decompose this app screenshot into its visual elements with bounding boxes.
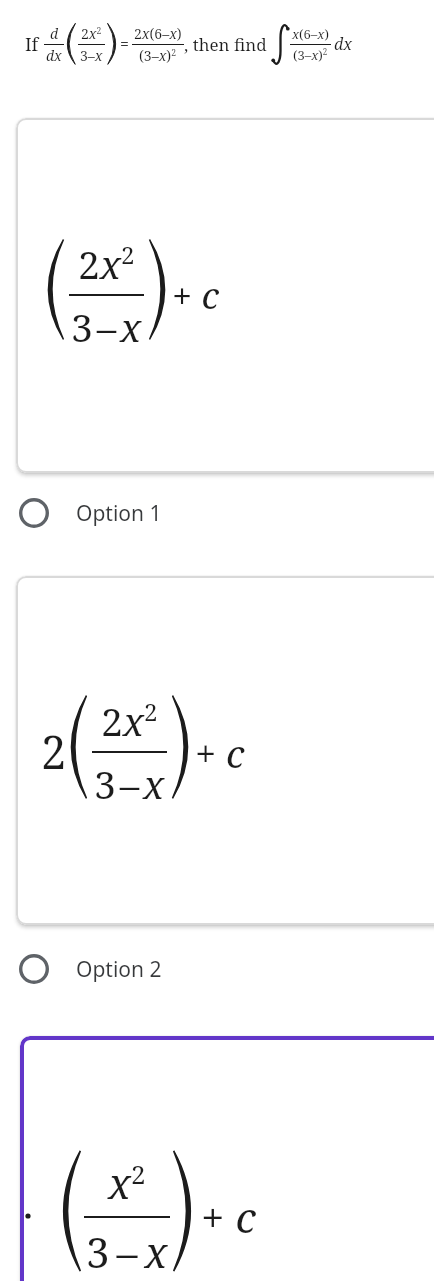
staticText: 2 (41, 721, 67, 782)
staticText: d (50, 24, 59, 43)
staticText: 2x(6–x) (134, 24, 182, 43)
staticText: Option 1 (76, 499, 162, 528)
staticText: x(6–x) (292, 25, 329, 43)
staticText: (3–x)2 (139, 46, 177, 65)
button[interactable]: Option 2 (19, 954, 162, 984)
staticText: 3 – x (94, 757, 165, 810)
staticText: 2x2 (78, 237, 135, 290)
button[interactable]: 2x2 (16, 118, 434, 473)
staticText: x2 (108, 1154, 146, 1211)
staticText: Option 2 (76, 955, 162, 984)
button[interactable]: x2 (20, 1036, 434, 1281)
staticText: 2x2 (101, 694, 158, 747)
staticText: 3–x (80, 46, 103, 65)
staticText: dx (46, 46, 62, 65)
staticText: If (25, 32, 43, 57)
staticText: 3 – x (71, 300, 142, 353)
button[interactable]: 2 (16, 576, 434, 925)
button[interactable]: Option 1 (19, 498, 162, 528)
staticText: 3 – x (86, 1223, 168, 1280)
staticText: , then find (184, 33, 272, 56)
staticText: + c (201, 1188, 256, 1245)
staticText: + c (195, 727, 245, 779)
staticText: + c (172, 271, 220, 320)
staticText: dx (334, 33, 353, 55)
staticText: 2x2 (81, 24, 102, 43)
staticText: (3–x)2 (293, 46, 328, 64)
staticText: = (120, 33, 129, 55)
